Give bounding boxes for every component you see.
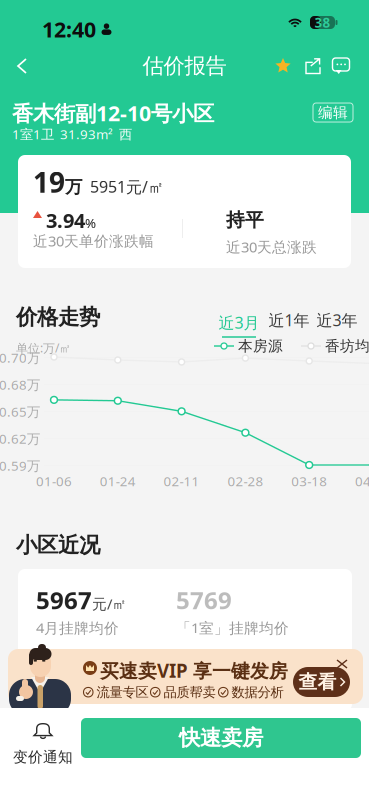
staticText: 3.94 — [46, 207, 85, 234]
button[interactable]: Back — [2, 44, 42, 88]
staticText: 本房源 — [238, 337, 283, 355]
staticText: 小区近况 — [16, 532, 100, 558]
staticText: 香坊均价 — [325, 337, 369, 355]
staticText: 编辑 — [318, 103, 348, 121]
button[interactable]: 近3年 — [319, 312, 355, 328]
staticText: 近3月 — [218, 312, 259, 333]
staticText: 近30天总涨跌 — [226, 237, 317, 256]
staticText: 持平 — [226, 208, 264, 231]
button[interactable]: 查看 — [293, 667, 350, 697]
staticText: 1室1卫 31.93m² 西 — [12, 125, 132, 143]
staticText: 04-04 — [355, 472, 369, 490]
staticText: 0.59万 — [0, 457, 40, 474]
staticText: 查看 — [298, 670, 336, 693]
staticText: 流量专区 — [96, 684, 148, 700]
button[interactable]: 近1年 — [271, 312, 307, 328]
staticText: 0.65万 — [0, 403, 40, 420]
staticText: 价格走势 — [16, 304, 100, 330]
staticText: % — [85, 214, 96, 232]
button[interactable]: Share — [297, 44, 329, 88]
staticText: 38 — [314, 14, 330, 31]
staticText: 「1室」挂牌均价 — [176, 618, 289, 637]
button[interactable]: 编辑 — [313, 103, 353, 122]
staticText: 02-11 — [164, 472, 200, 490]
button[interactable]: Favorite — [267, 44, 299, 88]
staticText: 02-28 — [227, 472, 263, 490]
staticText: 5951元/㎡ — [82, 176, 164, 197]
staticText: 近30天单价涨跌幅 — [33, 231, 154, 250]
staticText: 单位:万/㎡ — [16, 340, 71, 356]
staticText: 5967 — [36, 584, 92, 616]
button[interactable]: 变价通知 — [3, 716, 83, 772]
staticText: 买速卖VIP 享一键发房 — [100, 658, 288, 683]
button[interactable]: 快速卖房 — [81, 718, 361, 758]
staticText: 5769 — [176, 584, 232, 616]
staticText: 03-18 — [291, 472, 327, 490]
staticText: 01-06 — [36, 472, 72, 490]
staticText: 品质帮卖 — [163, 684, 215, 700]
staticText: 4月挂牌均价 — [36, 618, 119, 637]
button[interactable]: Messages — [325, 44, 357, 88]
button[interactable]: 近3月 — [221, 312, 257, 338]
staticText: 01-24 — [100, 472, 136, 490]
staticText: 19 — [33, 163, 65, 201]
staticText: 变价通知 — [13, 748, 73, 766]
button[interactable]: Close ad — [331, 654, 353, 674]
staticText: 0.68万 — [0, 376, 40, 393]
staticText: 0.70万 — [0, 349, 40, 366]
staticText: 估价报告 — [142, 53, 226, 79]
staticText: 快速卖房 — [179, 725, 263, 751]
staticText: 元/㎡ — [92, 594, 127, 614]
staticText: 12:40 — [42, 15, 96, 43]
staticText: 近1年 — [268, 309, 309, 331]
staticText: 近3年 — [316, 309, 357, 331]
staticText: 万 — [65, 176, 82, 198]
staticText: 香木街副12-10号小区 — [12, 99, 214, 127]
staticText: 数据分析 — [231, 684, 283, 700]
staticText: 0.62万 — [0, 430, 40, 447]
